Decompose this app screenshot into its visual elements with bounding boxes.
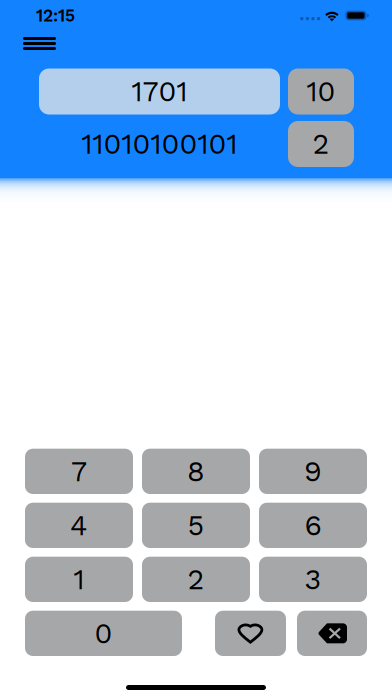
button[interactable]: 8 (142, 449, 250, 494)
staticText: 8 (187, 454, 205, 488)
button[interactable]: 0 (25, 611, 182, 656)
button[interactable]: 5 (142, 503, 250, 548)
staticText: 2 (312, 127, 329, 161)
button[interactable]: 3 (259, 557, 367, 602)
button[interactable]: Menu (17, 31, 62, 56)
staticText: 1701 (131, 75, 187, 108)
button[interactable]: 2 (288, 121, 354, 167)
staticText: 9 (304, 454, 322, 488)
staticText: 10 (306, 75, 335, 108)
button[interactable]: 1701 (39, 68, 280, 114)
staticText: 11010100101 (81, 127, 237, 161)
staticText: 12:15 (36, 5, 75, 26)
staticText: 6 (304, 508, 321, 542)
button[interactable]: 9 (259, 449, 367, 494)
button[interactable]: 7 (25, 449, 133, 494)
button[interactable]: 2 (142, 557, 250, 602)
staticText: 1 (73, 562, 84, 596)
staticText: 0 (94, 616, 112, 650)
staticText: 7 (71, 454, 87, 488)
button[interactable]: Delete (297, 611, 367, 656)
button[interactable]: 1 (25, 557, 133, 602)
button[interactable]: 10 (288, 68, 354, 114)
staticText: 2 (187, 562, 204, 596)
button[interactable]: Favorite (215, 611, 286, 656)
button[interactable]: 11010100101 (39, 121, 280, 167)
button[interactable]: 6 (259, 503, 367, 548)
staticText: 5 (187, 508, 204, 542)
staticText: 3 (304, 562, 321, 596)
staticText: 4 (70, 508, 88, 542)
button[interactable]: 4 (25, 503, 133, 548)
